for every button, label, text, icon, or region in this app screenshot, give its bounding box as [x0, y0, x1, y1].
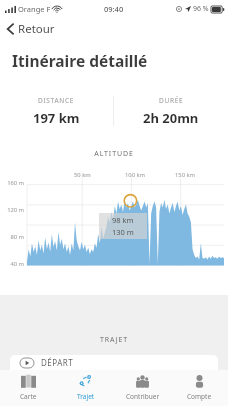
- other: Retour: [6, 22, 15, 36]
- staticText: 130 m: [112, 227, 134, 237]
- staticText: TRAJET: [0, 335, 228, 345]
- staticText: Trajet: [77, 392, 95, 401]
- staticText: 98 km: [112, 215, 134, 225]
- button[interactable]: DÉPART: [10, 355, 218, 370]
- staticText: 09:40: [104, 4, 124, 14]
- staticText: 100 km: [125, 171, 145, 179]
- staticText: 2h 20mn: [143, 109, 199, 127]
- staticText: 150 km: [175, 171, 195, 179]
- button[interactable]: Trajet: [57, 370, 114, 406]
- staticText: Itinéraire détaillé: [12, 50, 148, 71]
- staticText: Retour: [18, 21, 55, 37]
- staticText: 96 %: [193, 4, 209, 14]
- button[interactable]: Carte: [0, 370, 57, 406]
- staticText: Compte: [187, 392, 212, 401]
- other: Contribuer: [135, 374, 150, 389]
- staticText: DÉPART: [41, 357, 74, 368]
- staticText: 50 km: [74, 171, 91, 179]
- staticText: 40 m: [0, 260, 24, 268]
- staticText: Orange F: [18, 4, 51, 14]
- staticText: ALTITUDE: [0, 149, 228, 159]
- staticText: Carte: [20, 392, 37, 401]
- staticText: 80 m: [0, 233, 24, 241]
- staticText: 197 km: [33, 109, 80, 127]
- button[interactable]: Contribuer: [114, 370, 171, 406]
- staticText: Contribuer: [126, 392, 160, 401]
- staticText: 120 m: [0, 206, 24, 214]
- button[interactable]: Retour: [0, 18, 228, 40]
- button[interactable]: Compte: [171, 370, 228, 406]
- staticText: 160 m: [0, 179, 24, 187]
- staticText: DISTANCE: [38, 96, 75, 105]
- other: Trajet: [78, 374, 93, 389]
- other: Carte: [21, 374, 36, 389]
- staticText: DURÉE: [159, 96, 184, 105]
- other: Compte: [192, 374, 207, 389]
